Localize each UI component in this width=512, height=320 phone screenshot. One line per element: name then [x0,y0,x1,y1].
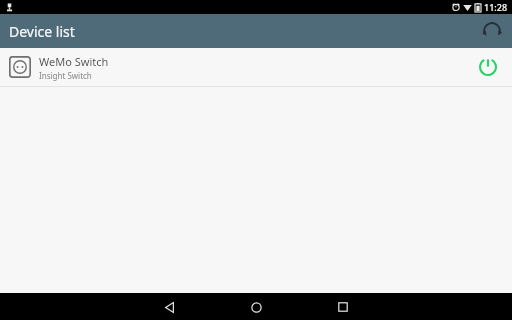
staticText: WeMo Switch [39,54,109,69]
button[interactable]: Recent apps [331,295,355,319]
button[interactable]: Refresh [476,15,508,47]
button[interactable]: Back [157,295,181,319]
button[interactable]: Toggle power [472,51,504,83]
staticText: 11:28 [484,1,508,13]
button[interactable]: Home [244,295,268,319]
staticText: Insight Switch [39,70,92,81]
button[interactable]: WeMo Switch [0,48,512,86]
staticText: Device list [9,22,75,41]
